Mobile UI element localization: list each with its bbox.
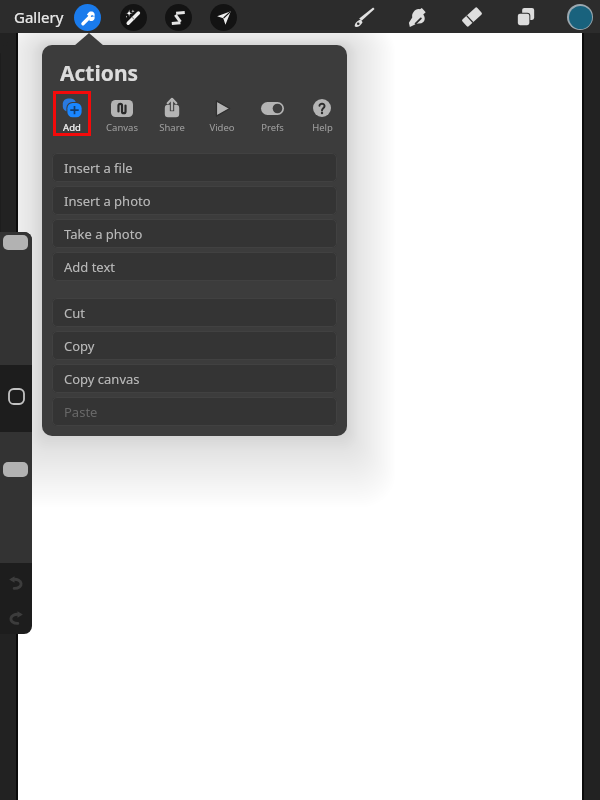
button[interactable]: Modify [9, 389, 24, 404]
button[interactable]: Paste [52, 397, 337, 426]
button[interactable]: Smudge [404, 3, 432, 31]
staticText: Copy [64, 337, 95, 355]
button[interactable]: Video [203, 91, 241, 134]
staticText: Actions [60, 59, 139, 88]
button[interactable]: Insert a photo [52, 186, 337, 215]
button[interactable]: Actions [74, 4, 101, 31]
button[interactable]: Adjustments [120, 4, 147, 31]
button[interactable]: Take a photo [52, 219, 337, 248]
staticText: Take a photo [64, 225, 143, 243]
staticText: Paste [64, 403, 98, 421]
staticText: Video [209, 121, 235, 134]
button[interactable]: Paint [350, 3, 378, 31]
button[interactable]: Erase [458, 3, 486, 31]
button[interactable]: Canvas [103, 91, 141, 134]
button[interactable]: Cut [52, 298, 337, 327]
button[interactable]: Selection [165, 4, 192, 31]
button[interactable]: Prefs [253, 91, 291, 134]
staticText: Insert a file [64, 159, 133, 177]
staticText: Help [312, 121, 333, 134]
staticText: Insert a photo [64, 192, 151, 210]
button[interactable]: Add text [52, 252, 337, 281]
button[interactable]: Copy canvas [52, 364, 337, 393]
button[interactable]: Color [567, 4, 593, 30]
button[interactable]: Transform [210, 4, 237, 31]
staticText: Add text [64, 258, 116, 276]
staticText: Canvas [106, 121, 138, 134]
button[interactable]: Redo [7, 609, 25, 627]
button[interactable]: Insert a file [52, 153, 337, 182]
button[interactable]: Undo [7, 574, 25, 592]
staticText: Copy canvas [64, 370, 140, 388]
staticText: Prefs [261, 121, 284, 134]
button[interactable]: Gallery [8, 5, 70, 29]
staticText: Share [159, 121, 185, 134]
staticText: Add [63, 121, 81, 134]
button[interactable]: Copy [52, 331, 337, 360]
button[interactable]: Layers [512, 3, 540, 31]
button[interactable]: Add [53, 91, 91, 134]
staticText: Cut [64, 304, 85, 322]
staticText: Gallery [14, 7, 64, 27]
button[interactable]: Opacity [0, 432, 32, 563]
button[interactable]: Help [303, 91, 341, 134]
button[interactable]: Share [153, 91, 191, 134]
button[interactable]: Brush size [0, 232, 32, 365]
